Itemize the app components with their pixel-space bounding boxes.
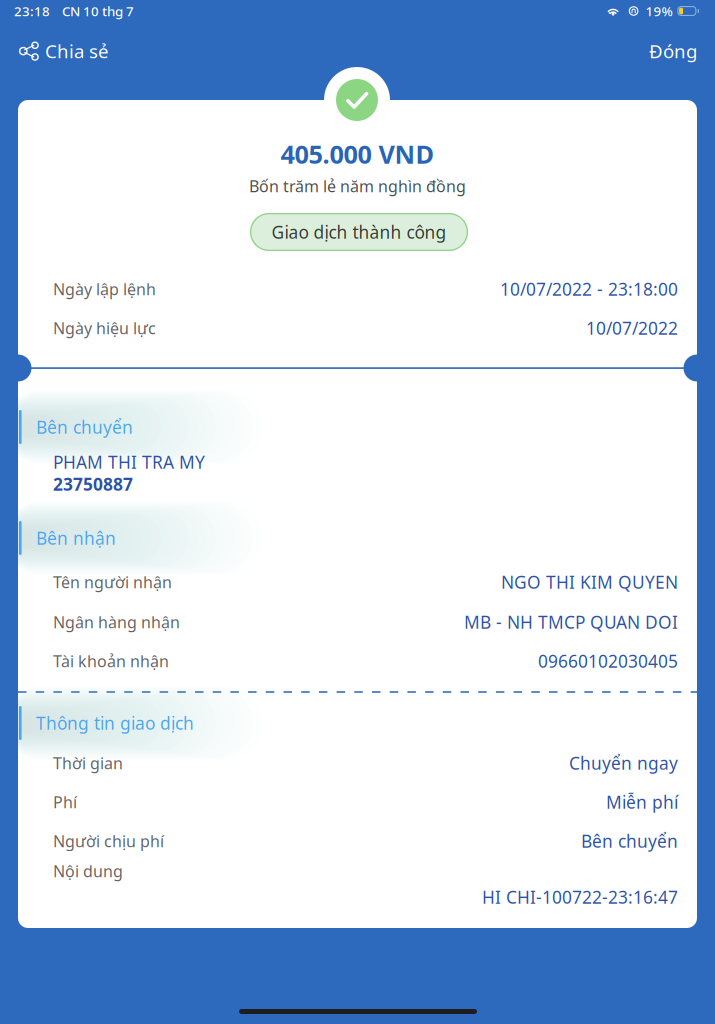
staticText: MB - NH TMCP QUAN DOI [464,610,678,633]
staticText: 10/07/2022 [586,316,678,339]
staticText: Người chịu phí [53,830,164,852]
staticText: 19% [645,2,672,20]
staticText: Ngày hiệu lực [53,317,156,339]
staticText: Bên chuyển [581,829,678,852]
staticText: CN 10 thg 7 [62,2,134,20]
staticText: Bốn trăm lẻ năm nghìn đồng [249,175,466,197]
staticText: Tài khoản nhận [53,650,169,672]
staticText: Bên nhận [36,526,116,549]
staticText: 23750887 [53,472,133,495]
staticText: Giao dịch thành công [271,220,446,243]
button[interactable]: Đóng [633,29,715,73]
staticText: Chia sẻ [45,39,109,63]
staticText: Thông tin giao dịch [36,711,194,734]
staticText: Chuyển ngay [569,751,678,774]
staticText: 405.000 VND [280,137,434,171]
staticText: Ngân hàng nhận [53,611,180,633]
staticText: Nội dung [53,860,123,882]
staticText: Phí [53,791,77,813]
staticText: Đóng [649,39,697,63]
staticText: Miễn phí [606,790,678,813]
staticText: 09660102030405 [538,649,678,672]
staticText: PHAM THI TRA MY [53,450,205,473]
staticText: Bên chuyển [36,415,133,438]
button[interactable]: Chia sẻ [0,29,125,73]
staticText: Thời gian [53,752,123,774]
staticText: HI CHI-100722-23:16:47 [482,885,678,908]
staticText: 10/07/2022 - 23:18:00 [500,277,678,300]
staticText: Tên người nhận [53,571,172,593]
staticText: Ngày lập lệnh [53,278,156,300]
staticText: NGO THI KIM QUYEN [501,570,678,593]
staticText: 23:18 [14,2,50,20]
